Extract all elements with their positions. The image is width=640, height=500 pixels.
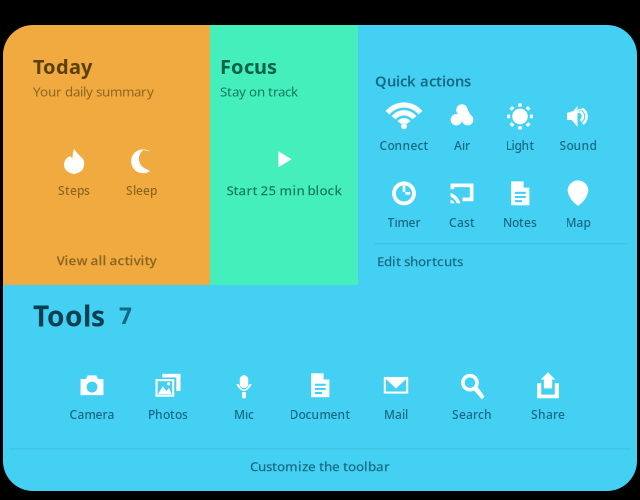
staticText: Connect bbox=[379, 137, 428, 153]
button[interactable]: Customize the toolbar bbox=[3, 449, 637, 491]
staticText: Sleep bbox=[126, 182, 157, 198]
button[interactable]: Photos bbox=[148, 372, 188, 422]
staticText: Search bbox=[452, 406, 492, 422]
staticText: Photos bbox=[148, 406, 188, 422]
staticText: Mail bbox=[384, 406, 408, 422]
staticText: Map bbox=[565, 214, 590, 230]
staticText: Stay on track bbox=[220, 83, 298, 100]
staticText: Sound bbox=[559, 137, 596, 153]
button[interactable]: Mail bbox=[383, 372, 409, 422]
staticText: Your daily summary bbox=[33, 83, 154, 100]
staticText: 7 bbox=[119, 300, 132, 331]
staticText: Cast bbox=[449, 214, 475, 230]
staticText: Start 25 min block bbox=[226, 181, 341, 199]
button[interactable]: Map bbox=[565, 180, 591, 230]
staticText: Steps bbox=[58, 182, 90, 198]
button[interactable]: Start 25 min block bbox=[220, 135, 348, 199]
staticText: Today bbox=[33, 53, 92, 80]
staticText: Light bbox=[505, 137, 534, 153]
button[interactable]: Sleep bbox=[126, 148, 157, 198]
staticText: Share bbox=[531, 406, 565, 422]
button[interactable]: View all activity bbox=[33, 246, 180, 269]
staticText: Document bbox=[289, 406, 350, 422]
staticText: Camera bbox=[69, 406, 114, 422]
button[interactable]: Search bbox=[452, 372, 492, 422]
staticText: Timer bbox=[387, 214, 420, 230]
button[interactable]: Light bbox=[505, 103, 534, 153]
button[interactable]: Air bbox=[449, 103, 475, 153]
button[interactable]: Share bbox=[531, 372, 565, 422]
staticText: Customize the toolbar bbox=[250, 457, 390, 475]
button[interactable]: Document bbox=[289, 372, 350, 422]
button[interactable]: Connect bbox=[379, 103, 428, 153]
button[interactable]: Steps bbox=[58, 148, 90, 198]
button[interactable]: Timer bbox=[387, 180, 420, 230]
staticText: Air bbox=[454, 137, 470, 153]
button[interactable]: Edit shortcuts bbox=[375, 252, 463, 285]
button[interactable]: Notes bbox=[503, 180, 537, 230]
staticText: Quick actions bbox=[375, 71, 471, 90]
staticText: Focus bbox=[220, 53, 277, 80]
staticText: Tools bbox=[33, 297, 105, 334]
button[interactable]: Sound bbox=[559, 103, 596, 153]
button[interactable]: Cast bbox=[449, 180, 475, 230]
staticText: View all activity bbox=[56, 251, 156, 269]
button[interactable]: Camera bbox=[69, 372, 114, 422]
button[interactable]: Mic bbox=[231, 372, 257, 422]
staticText: Edit shortcuts bbox=[377, 252, 463, 270]
staticText: Mic bbox=[234, 406, 254, 422]
staticText: Notes bbox=[503, 214, 537, 230]
